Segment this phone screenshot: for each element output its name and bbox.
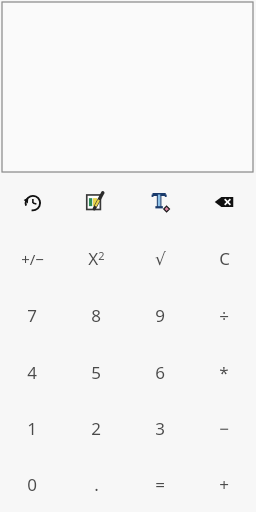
staticText: 8 xyxy=(91,304,101,327)
button[interactable]: 6 xyxy=(128,344,192,400)
button[interactable]: ÷ xyxy=(192,287,256,344)
button[interactable]: * xyxy=(192,344,256,400)
staticText: +/− xyxy=(21,249,44,269)
button[interactable]: − xyxy=(192,400,256,456)
button[interactable]: 8 xyxy=(64,287,128,344)
staticText: 6 xyxy=(155,361,165,384)
staticText: 1 xyxy=(27,417,37,440)
staticText: 7 xyxy=(27,304,37,327)
button[interactable]: 9 xyxy=(128,287,192,344)
staticText: 5 xyxy=(91,361,101,384)
button[interactable]: Notes xyxy=(64,173,128,230)
button[interactable]: 2 xyxy=(64,400,128,456)
staticText: C xyxy=(219,247,230,270)
staticText: = xyxy=(155,473,165,496)
button[interactable]: . xyxy=(64,456,128,512)
button[interactable]: + xyxy=(192,456,256,512)
staticText: 3 xyxy=(155,417,165,440)
button[interactable]: 5 xyxy=(64,344,128,400)
button[interactable]: Text format xyxy=(128,173,192,230)
button[interactable]: √ xyxy=(128,230,192,287)
button[interactable]: 7 xyxy=(0,287,64,344)
staticText: √ xyxy=(155,249,166,269)
button[interactable]: History xyxy=(0,173,64,230)
staticText: 9 xyxy=(155,304,165,327)
staticText: + xyxy=(219,473,229,496)
button[interactable]: +/− xyxy=(0,230,64,287)
staticText: X2 xyxy=(88,247,105,270)
staticText: . xyxy=(94,473,99,496)
button[interactable]: C xyxy=(192,230,256,287)
button[interactable]: 0 xyxy=(0,456,64,512)
button[interactable]: Backspace xyxy=(192,173,256,230)
button[interactable]: 1 xyxy=(0,400,64,456)
staticText: 0 xyxy=(27,473,37,496)
button[interactable]: = xyxy=(128,456,192,512)
staticText: ÷ xyxy=(219,304,229,327)
staticText: − xyxy=(219,417,229,440)
staticText: 4 xyxy=(27,361,37,384)
button[interactable]: X2 xyxy=(64,230,128,287)
button[interactable]: 3 xyxy=(128,400,192,456)
staticText: 2 xyxy=(91,417,101,440)
button[interactable]: 4 xyxy=(0,344,64,400)
staticText: * xyxy=(219,361,229,384)
